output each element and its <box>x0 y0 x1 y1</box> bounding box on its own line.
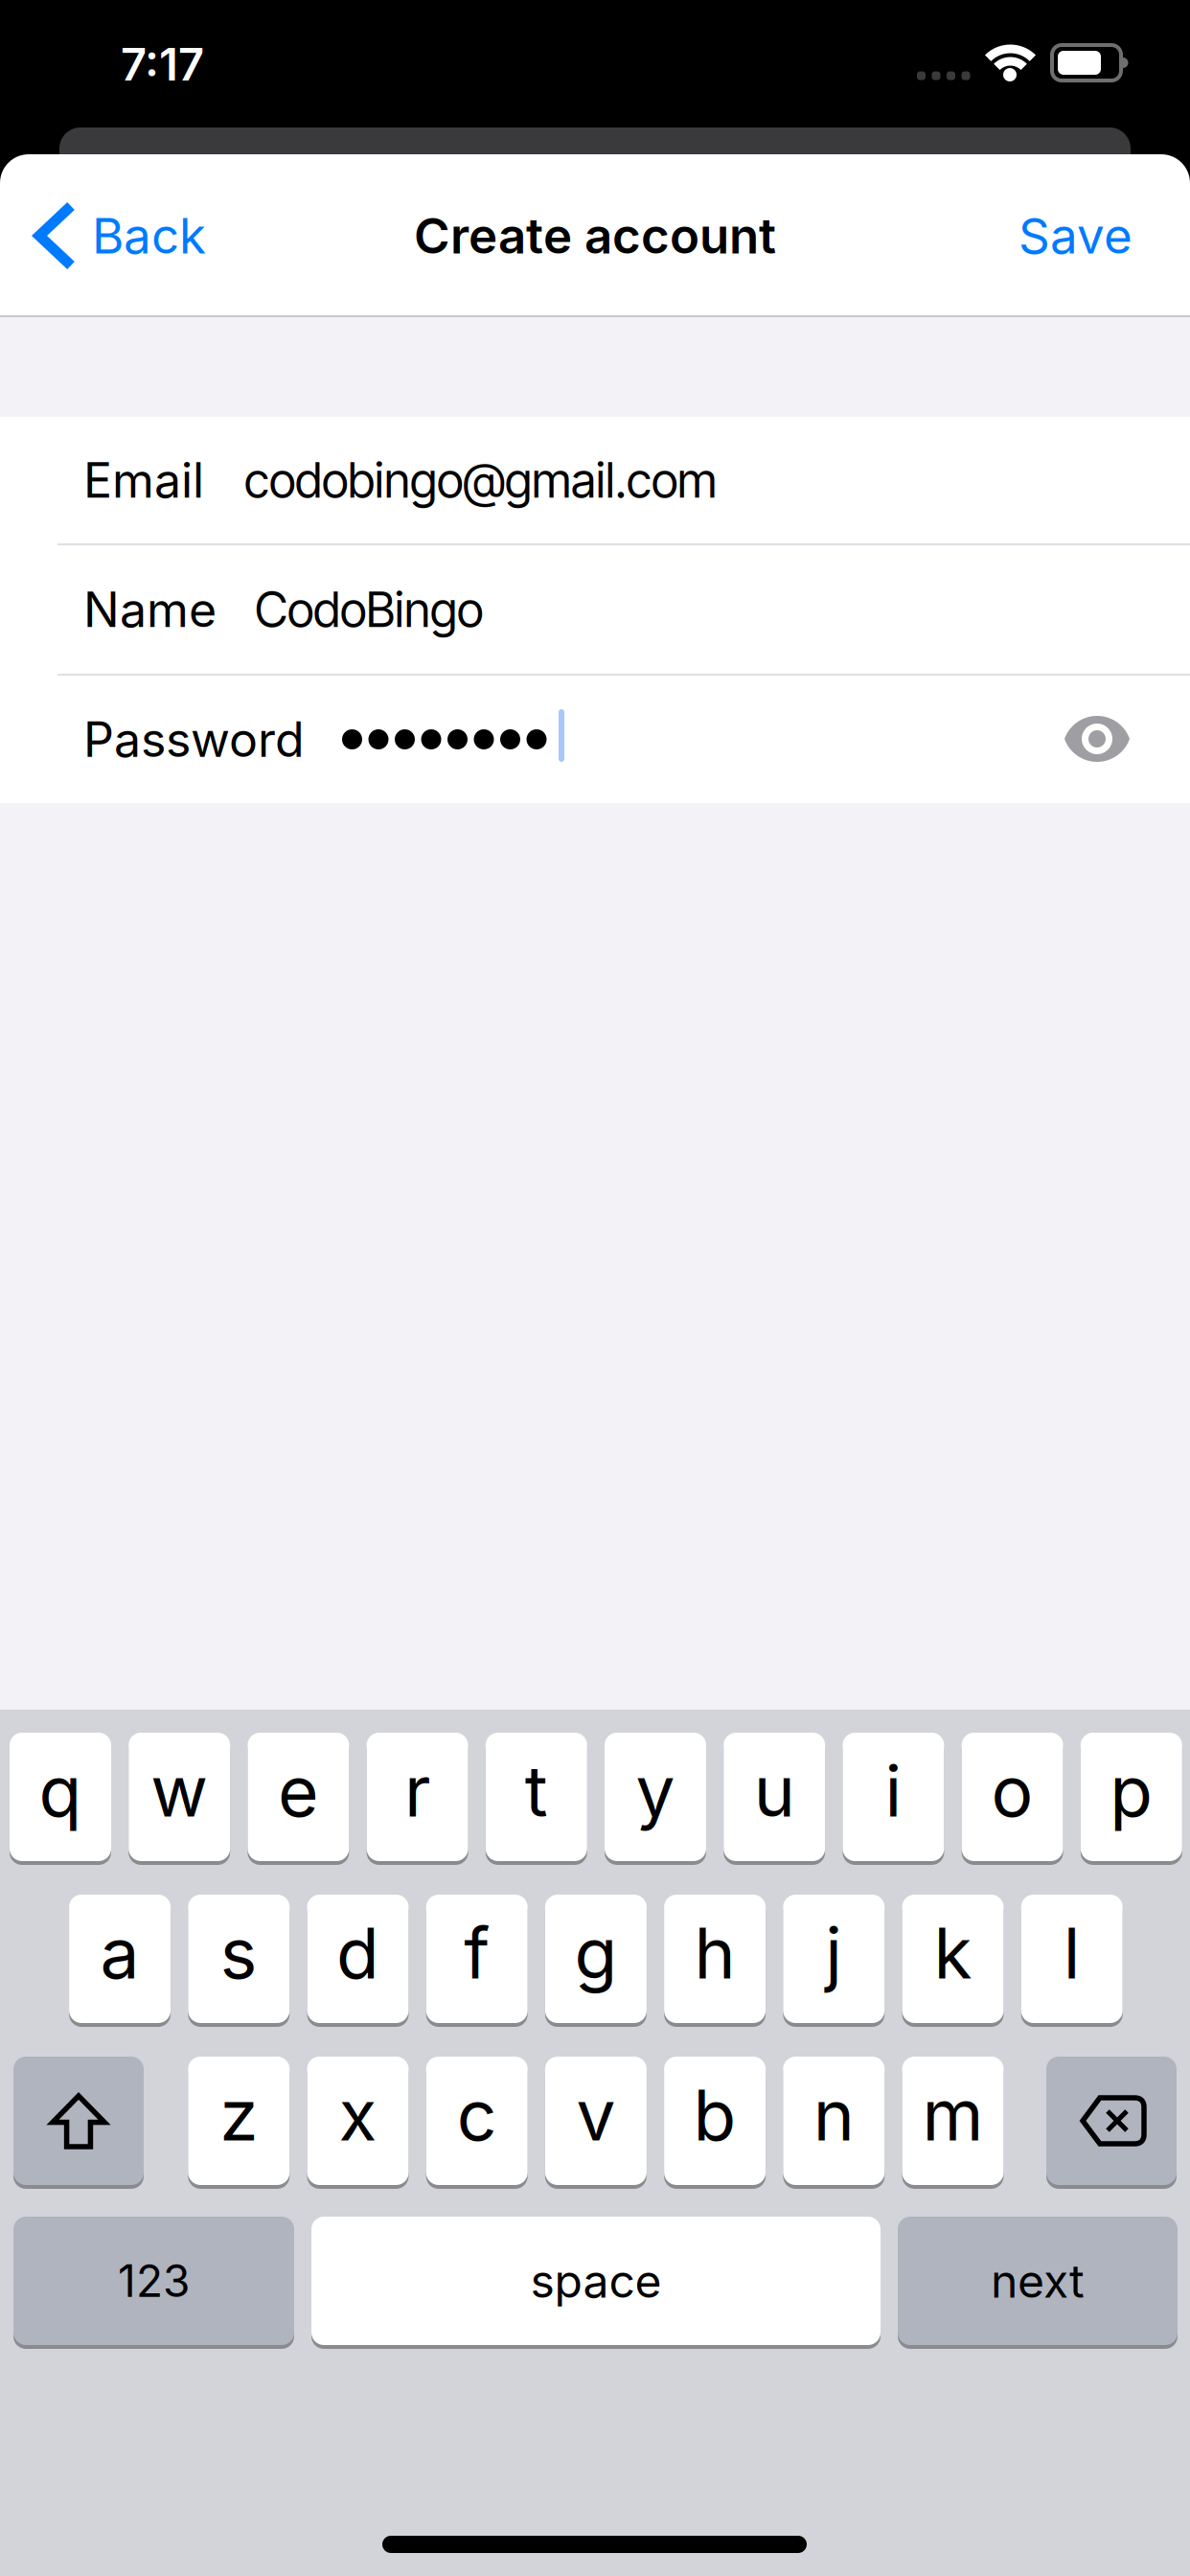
staticText: Password <box>83 710 305 768</box>
staticText: r <box>404 1749 430 1833</box>
staticText: i <box>885 1749 902 1833</box>
button[interactable]: t <box>486 1733 587 1865</box>
button[interactable]: a <box>69 1895 171 2027</box>
button[interactable]: l <box>1021 1895 1123 2027</box>
staticText: Email <box>83 451 204 509</box>
button[interactable]: m <box>902 2057 1004 2189</box>
staticText: k <box>934 1911 972 1995</box>
button[interactable]: Back <box>39 206 206 265</box>
staticText: a <box>100 1911 140 1995</box>
staticText: j <box>825 1911 842 1995</box>
staticText: n <box>813 2073 854 2157</box>
staticText: next <box>991 2253 1085 2309</box>
staticText: space <box>530 2253 662 2309</box>
button[interactable]: h <box>664 1895 766 2027</box>
button[interactable]: u <box>724 1733 825 1865</box>
staticText: Create account <box>414 206 776 265</box>
staticText: x <box>339 2073 377 2157</box>
button[interactable]: 123 <box>13 2217 294 2349</box>
staticText: s <box>220 1911 258 1995</box>
staticText: b <box>693 2073 736 2157</box>
staticText: f <box>464 1911 490 1995</box>
button[interactable]: Delete <box>1046 2057 1177 2189</box>
button[interactable]: Save <box>1018 206 1133 265</box>
button[interactable]: y <box>605 1733 706 1865</box>
staticText: CodoBingo <box>255 581 483 639</box>
staticText: 123 <box>118 2254 190 2308</box>
button[interactable]: x <box>307 2057 409 2189</box>
button[interactable]: Password <box>0 676 1190 803</box>
button[interactable]: space <box>311 2217 881 2349</box>
staticText: q <box>39 1749 82 1833</box>
button[interactable]: v <box>545 2057 647 2189</box>
button[interactable]: o <box>962 1733 1063 1865</box>
button[interactable]: Show password <box>1064 716 1130 762</box>
staticText: e <box>278 1749 319 1833</box>
button[interactable]: d <box>307 1895 409 2027</box>
staticText: codobingo@gmail.com <box>244 451 717 509</box>
staticText: m <box>922 2073 984 2157</box>
staticText: l <box>1063 1911 1080 1995</box>
staticText: d <box>336 1911 379 1995</box>
staticText: z <box>220 2073 258 2157</box>
staticText: y <box>636 1749 675 1833</box>
button[interactable]: n <box>783 2057 885 2189</box>
button[interactable]: i <box>843 1733 944 1865</box>
staticText: v <box>576 2073 616 2157</box>
staticText: t <box>525 1749 548 1833</box>
staticText: u <box>754 1749 795 1833</box>
staticText: w <box>151 1749 208 1833</box>
button[interactable]: g <box>545 1895 647 2027</box>
button[interactable]: p <box>1081 1733 1182 1865</box>
staticText: Back <box>92 206 206 265</box>
button[interactable]: next <box>898 2217 1178 2349</box>
button[interactable]: z <box>188 2057 290 2189</box>
staticText: Save <box>1018 206 1133 265</box>
button[interactable]: j <box>783 1895 885 2027</box>
button[interactable]: e <box>248 1733 349 1865</box>
button[interactable]: c <box>426 2057 528 2189</box>
staticText: g <box>574 1911 617 1995</box>
button[interactable]: b <box>664 2057 766 2189</box>
button[interactable]: k <box>902 1895 1004 2027</box>
button[interactable]: Name <box>0 545 1190 674</box>
staticText: h <box>694 1911 735 1995</box>
button[interactable]: w <box>129 1733 230 1865</box>
button[interactable]: Email <box>0 417 1190 543</box>
staticText: Name <box>83 581 217 639</box>
staticText: c <box>457 2073 497 2157</box>
button[interactable]: s <box>188 1895 290 2027</box>
button[interactable]: q <box>10 1733 111 1865</box>
button[interactable]: Shift <box>13 2057 144 2189</box>
button[interactable]: f <box>426 1895 528 2027</box>
staticText: p <box>1110 1749 1153 1833</box>
staticText: o <box>991 1749 1033 1833</box>
staticText: 7:17 <box>121 37 204 92</box>
button[interactable]: r <box>367 1733 468 1865</box>
